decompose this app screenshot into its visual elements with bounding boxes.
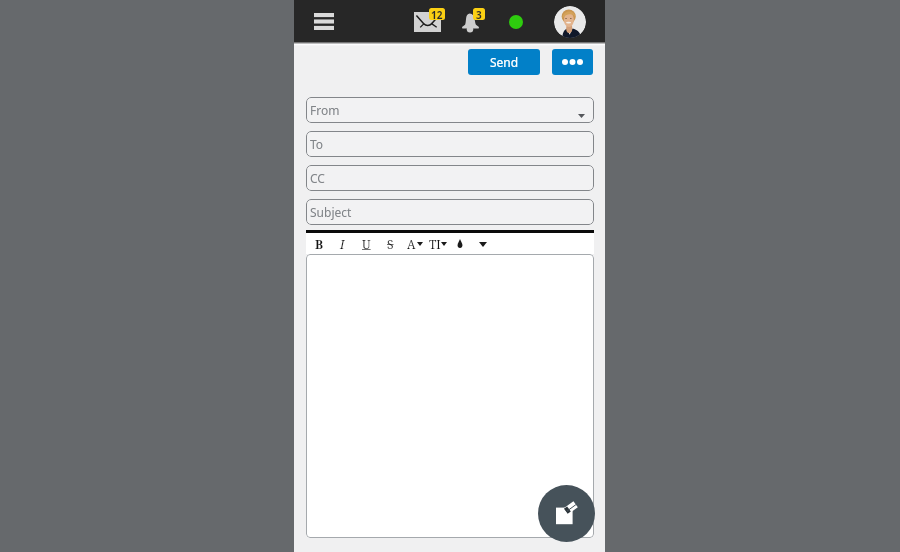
button[interactable]: I (334, 233, 350, 254)
button[interactable]: Profile (554, 6, 586, 38)
staticText: Subject (310, 204, 352, 220)
staticText: A (407, 236, 416, 252)
button[interactable]: Send (468, 49, 540, 75)
button[interactable]: CC (306, 165, 594, 191)
button[interactable]: U (358, 233, 374, 254)
button[interactable]: Compose (538, 485, 595, 542)
staticText: B (315, 236, 324, 252)
button[interactable]: Options (417, 242, 423, 246)
button[interactable]: Options (479, 242, 487, 247)
button[interactable]: Messages (412, 6, 447, 34)
staticText: TI (429, 236, 441, 252)
button[interactable]: A (403, 233, 419, 254)
button[interactable]: S (382, 233, 398, 254)
button[interactable]: Options (441, 242, 447, 246)
button[interactable]: B (311, 233, 327, 254)
staticText: From (310, 102, 340, 118)
staticText: CC (310, 170, 325, 186)
button[interactable]: TI (427, 233, 443, 254)
staticText: Send (490, 54, 519, 70)
button[interactable] (306, 254, 594, 538)
button[interactable]: Text color (457, 239, 463, 249)
staticText: To (310, 136, 324, 152)
staticText: 12 (431, 8, 443, 20)
button[interactable]: Notifications (460, 6, 487, 34)
staticText: S (387, 236, 394, 252)
button[interactable]: Online status (509, 15, 523, 29)
button[interactable]: Menu (309, 9, 338, 34)
button[interactable]: From (306, 97, 594, 123)
staticText: I (340, 236, 345, 252)
button[interactable]: More options (552, 49, 593, 75)
button[interactable]: To (306, 131, 594, 157)
staticText: U (362, 236, 371, 252)
button[interactable]: Subject (306, 199, 594, 225)
staticText: 3 (476, 8, 482, 20)
